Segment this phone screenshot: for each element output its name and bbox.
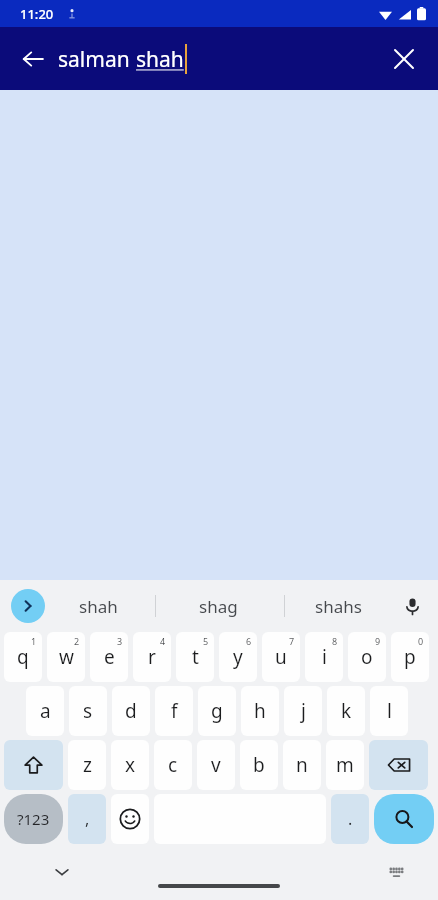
button[interactable]: v [197, 740, 235, 790]
button[interactable]: Clear [382, 37, 426, 81]
staticText: shag [199, 595, 238, 618]
staticText: v [211, 752, 221, 778]
button[interactable]: m [326, 740, 364, 790]
button[interactable]: r [133, 632, 171, 682]
button[interactable]: , [68, 794, 106, 844]
button[interactable]: ?123 [4, 794, 63, 844]
button[interactable]: q [4, 632, 42, 682]
staticText: h [254, 698, 266, 724]
button[interactable]: f [155, 686, 193, 736]
staticText: 9 [375, 635, 381, 647]
button[interactable]: Back [10, 36, 56, 82]
button[interactable]: Change keyboard [378, 854, 414, 890]
staticText: , [85, 808, 90, 830]
staticText: shahs [315, 595, 362, 618]
button[interactable]: g [198, 686, 236, 736]
staticText: p [404, 644, 416, 670]
staticText: 6 [246, 635, 252, 647]
staticText: e [104, 644, 115, 670]
button[interactable]: n [283, 740, 321, 790]
button[interactable]: w [47, 632, 85, 682]
button[interactable]: Voice input [394, 588, 430, 624]
staticText: salman [58, 45, 136, 74]
button[interactable]: Shift [4, 740, 63, 790]
button[interactable]: shah [43, 580, 153, 632]
button[interactable]: h [241, 686, 279, 736]
button[interactable]: i [305, 632, 343, 682]
staticText: b [253, 752, 265, 778]
button[interactable]: Backspace [369, 740, 428, 790]
staticText: s [83, 698, 93, 724]
staticText: r [148, 644, 156, 670]
staticText: y [233, 644, 243, 670]
staticText: 1 [31, 635, 37, 647]
button[interactable]: e [90, 632, 128, 682]
button[interactable]: Search [374, 794, 434, 844]
staticText: shah [136, 45, 184, 74]
button[interactable]: b [240, 740, 278, 790]
button[interactable]: x [111, 740, 149, 790]
button[interactable]: c [154, 740, 192, 790]
staticText: 2 [74, 635, 80, 647]
button[interactable]: d [112, 686, 150, 736]
staticText: m [336, 752, 354, 778]
button[interactable]: y [219, 632, 257, 682]
button[interactable]: s [69, 686, 107, 736]
staticText: i [322, 644, 327, 670]
staticText: o [361, 644, 373, 670]
staticText: u [275, 644, 287, 670]
staticText: g [211, 698, 223, 724]
staticText: 5 [203, 635, 209, 647]
staticText: 3 [117, 635, 123, 647]
staticText: shah [79, 595, 118, 618]
staticText: x [125, 752, 136, 778]
staticText: . [348, 808, 353, 830]
staticText: 0 [418, 635, 424, 647]
button[interactable]: . [331, 794, 369, 844]
button[interactable]: More suggestions [11, 589, 45, 623]
button[interactable]: t [176, 632, 214, 682]
staticText: k [341, 698, 352, 724]
staticText: f [171, 698, 178, 724]
button[interactable]: a [26, 686, 64, 736]
staticText: d [125, 698, 137, 724]
staticText: 8 [332, 635, 338, 647]
staticText: ?123 [17, 809, 50, 829]
staticText: l [387, 698, 392, 724]
staticText: q [17, 644, 29, 670]
button[interactable]: k [327, 686, 365, 736]
staticText: n [296, 752, 308, 778]
button[interactable]: Hide keyboard [42, 852, 82, 892]
button[interactable]: Emoji [111, 794, 149, 844]
button[interactable]: shag [163, 580, 273, 632]
button[interactable]: j [284, 686, 322, 736]
button[interactable]: o [348, 632, 386, 682]
staticText: a [40, 698, 51, 724]
button[interactable]: l [370, 686, 408, 736]
button[interactable]: shahs [283, 580, 393, 632]
button[interactable]: z [68, 740, 106, 790]
staticText: 7 [289, 635, 295, 647]
staticText: 11:20 [20, 5, 54, 23]
button[interactable]: p [391, 632, 429, 682]
staticText: c [168, 752, 178, 778]
button[interactable]: u [262, 632, 300, 682]
staticText: z [83, 752, 92, 778]
staticText: t [192, 644, 199, 670]
staticText: 4 [160, 635, 166, 647]
staticText: j [301, 698, 306, 724]
staticText: w [59, 644, 74, 670]
